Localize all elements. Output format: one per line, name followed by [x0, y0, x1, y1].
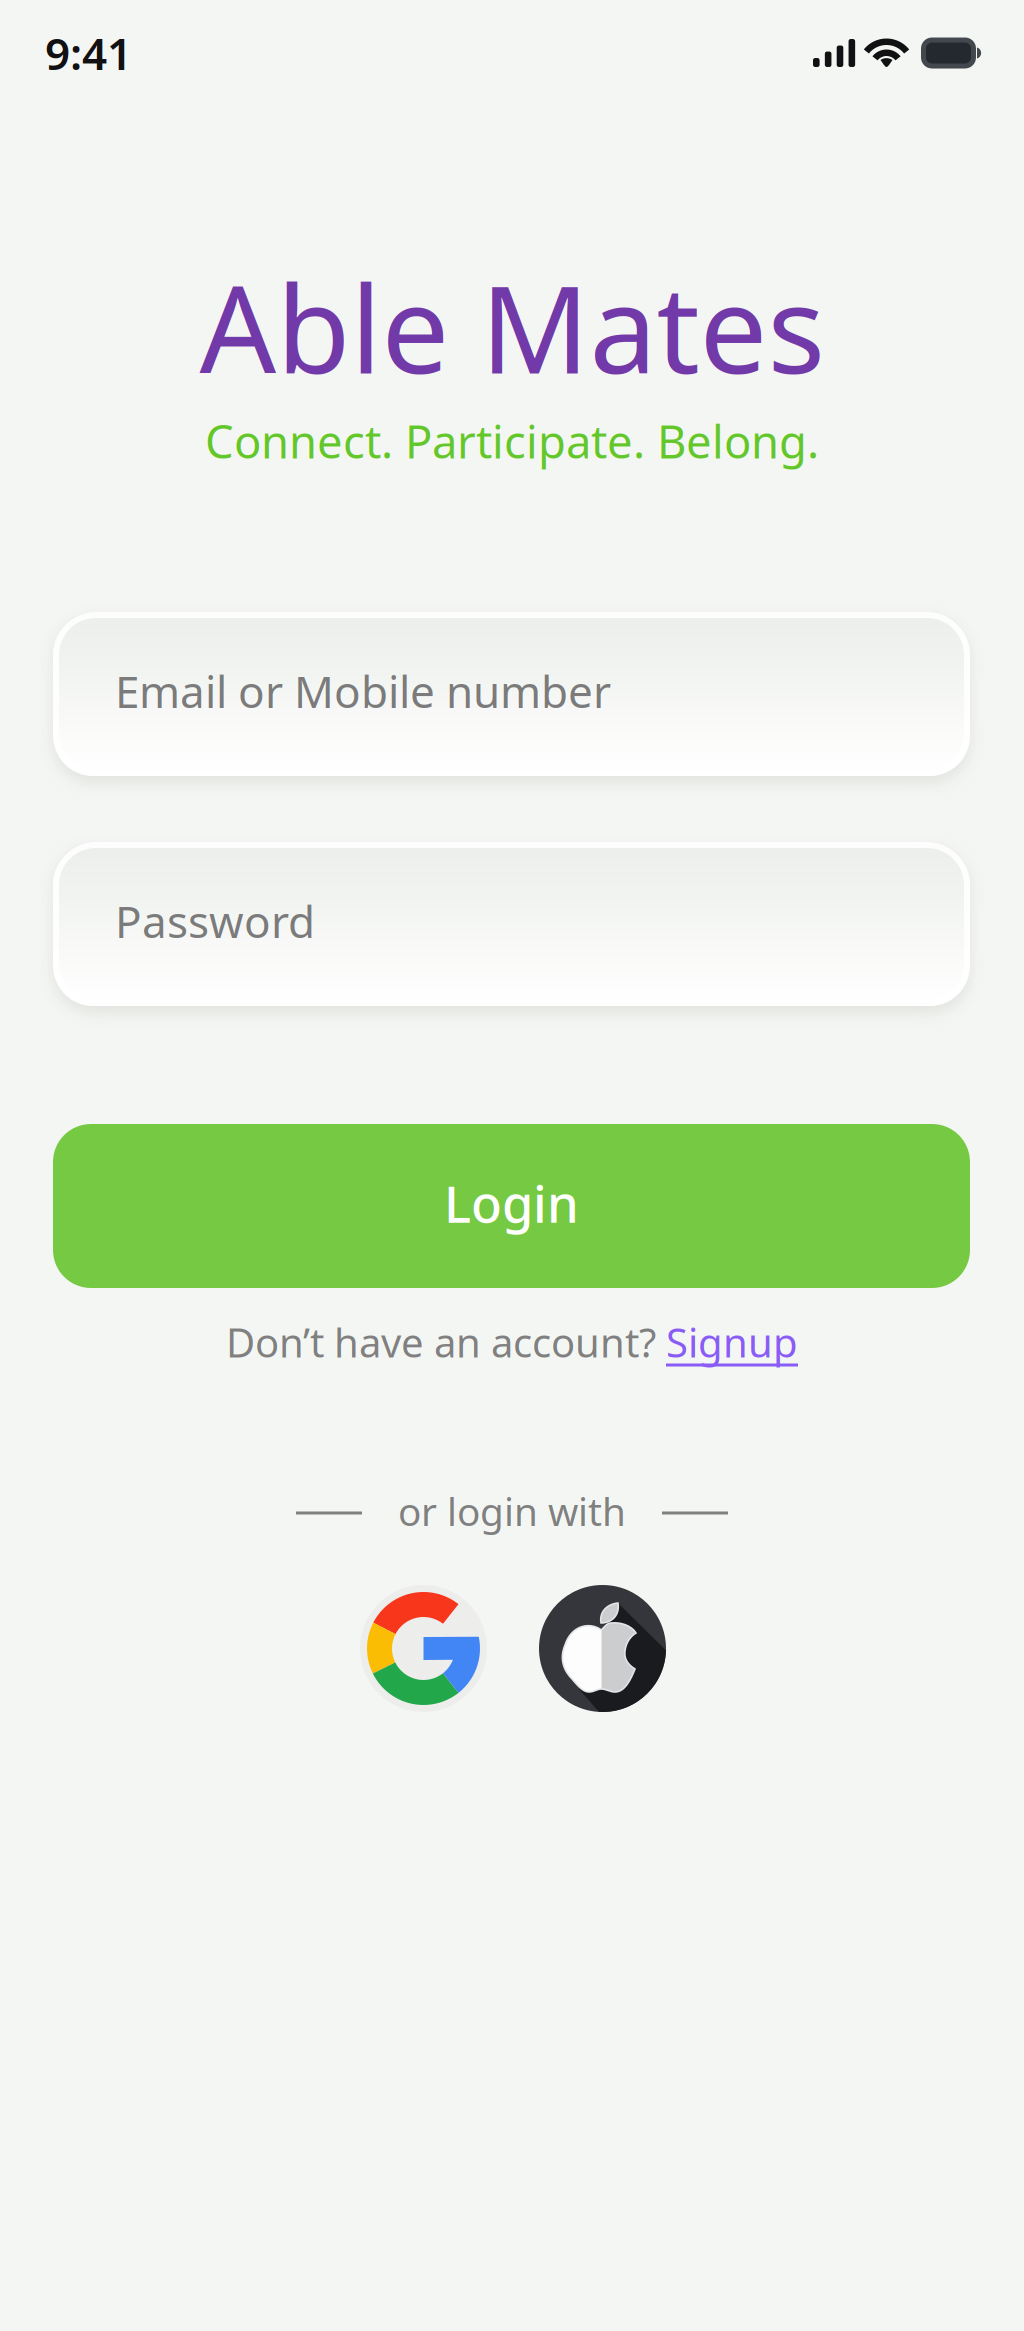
staticText: 9:41: [45, 24, 132, 82]
staticText: Signup: [666, 1315, 798, 1368]
staticText: or login with: [398, 1485, 626, 1537]
staticText: Password: [115, 892, 315, 950]
button[interactable]: Sign in with Apple: [539, 1585, 666, 1712]
staticText: Email or Mobile number: [115, 662, 611, 720]
staticText: Able Mates: [199, 247, 824, 407]
button[interactable]: Sign in with Google: [360, 1585, 487, 1712]
staticText: Login: [444, 1169, 579, 1237]
button[interactable]: Signup: [666, 1315, 798, 1368]
staticText: Don’t have an account?: [226, 1315, 666, 1368]
staticText: Connect. Participate. Belong.: [205, 411, 819, 471]
button[interactable]: Login: [53, 1124, 970, 1288]
